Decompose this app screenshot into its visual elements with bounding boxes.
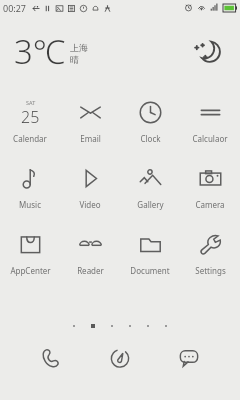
button[interactable]: Gallery [120,159,180,225]
staticText: Camera [195,199,225,210]
staticText: Gallery [137,199,164,210]
staticText: Document [130,265,170,276]
button[interactable]: Email [60,93,120,159]
staticText: 3℃ [14,29,66,74]
button[interactable]: Calculaor [180,93,240,159]
staticText: 上海 [70,42,88,53]
staticText: 00:27 [3,2,27,14]
staticText: Calculaor [192,133,228,144]
button[interactable]: 3℃ [0,15,240,87]
staticText: SAT [26,99,36,106]
button[interactable]: Settings [180,225,240,291]
button[interactable]: Music [0,159,60,225]
staticText: Email [80,133,101,144]
button[interactable]: AppCenter [0,225,60,291]
button[interactable]: Document [120,225,180,291]
button[interactable]: Weather, clear night [190,34,224,68]
staticText: Settings [195,265,226,276]
staticText: AppCenter [10,265,51,276]
button[interactable]: Phone [33,340,69,376]
button[interactable]: Reader [60,225,120,291]
button[interactable]: Browser [102,340,138,376]
button[interactable]: SAT [0,93,60,159]
staticText: 晴 [70,54,79,65]
staticText: 25 [21,106,40,126]
staticText: Reader [77,265,104,276]
staticText: Calendar [13,133,47,144]
staticText: Video [79,199,101,210]
staticText: Clock [140,133,161,144]
staticText: Music [19,199,41,210]
button[interactable]: Clock [120,93,180,159]
button[interactable]: Video [60,159,120,225]
button[interactable]: Camera [180,159,240,225]
button[interactable]: Messages [171,340,207,376]
